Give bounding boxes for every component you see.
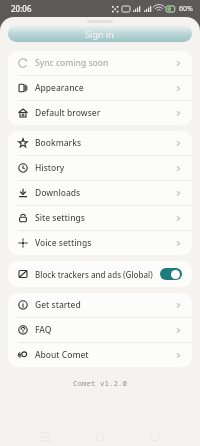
staticText: 20:06 (11, 3, 32, 14)
staticText: Sync coming soon (35, 57, 109, 69)
button[interactable]: Site settings (8, 206, 192, 230)
button[interactable]: Default browser (8, 101, 192, 125)
button[interactable]: Downloads (8, 181, 192, 205)
button[interactable]: Appearance (8, 76, 192, 100)
staticText: Bookmarks (35, 137, 82, 149)
staticText: Default browser (35, 107, 101, 119)
staticText: Sign in (85, 28, 115, 40)
staticText: Site settings (35, 212, 85, 224)
staticText: History (35, 162, 65, 174)
button[interactable]: Voice settings (8, 231, 192, 255)
button[interactable]: Get started (8, 293, 192, 317)
staticText: Comet v1.2.0 (73, 378, 127, 388)
staticText: Block trackers and ads (Global) (35, 269, 153, 280)
staticText: Voice settings (35, 237, 92, 249)
staticText: Downloads (35, 187, 81, 199)
button[interactable]: FAQ (8, 318, 192, 342)
button[interactable]: About Comet (8, 343, 192, 367)
staticText: Get started (35, 299, 81, 311)
button[interactable]: Block trackers and ads (Global) (8, 261, 192, 287)
button[interactable]: Sign in (8, 25, 192, 42)
staticText: About Comet (35, 349, 89, 361)
button[interactable]: Bookmarks (8, 131, 192, 155)
staticText: 60% (179, 4, 193, 14)
staticText: FAQ (35, 324, 52, 336)
button[interactable]: History (8, 156, 192, 180)
staticText: Appearance (35, 82, 84, 94)
button[interactable]: Sync coming soon (8, 51, 192, 75)
